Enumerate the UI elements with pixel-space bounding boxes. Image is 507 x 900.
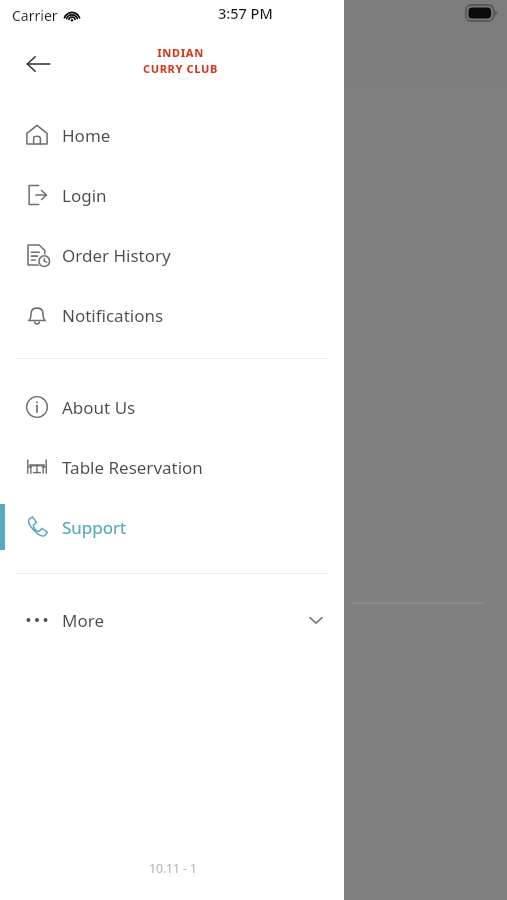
staticText: Order History — [62, 244, 171, 267]
button[interactable]: Table Reservation — [0, 443, 344, 491]
staticText: Home — [62, 124, 111, 147]
staticText: Table Reservation — [62, 456, 203, 479]
staticText: More — [62, 609, 104, 632]
button[interactable]: Support — [0, 503, 344, 551]
staticText: 3:57 PM — [218, 3, 273, 23]
staticText: Login — [62, 184, 107, 207]
staticText: About Us — [62, 396, 136, 419]
button[interactable]: About Us — [0, 383, 344, 431]
staticText: Support — [62, 516, 127, 539]
button[interactable]: Login — [0, 171, 344, 219]
button[interactable]: Order History — [0, 231, 344, 279]
staticText: 10.11 - 1 — [138, 860, 208, 876]
staticText: CURRY CLUB — [143, 61, 218, 76]
button[interactable]: Notifications — [0, 291, 344, 339]
button[interactable] — [344, 0, 507, 900]
button[interactable]: Home — [0, 111, 344, 159]
staticText: Carrier — [12, 6, 58, 25]
button[interactable]: More — [0, 596, 344, 644]
staticText: Notifications — [62, 304, 164, 327]
button[interactable]: Back — [16, 44, 60, 84]
staticText: INDIAN — [157, 45, 204, 60]
